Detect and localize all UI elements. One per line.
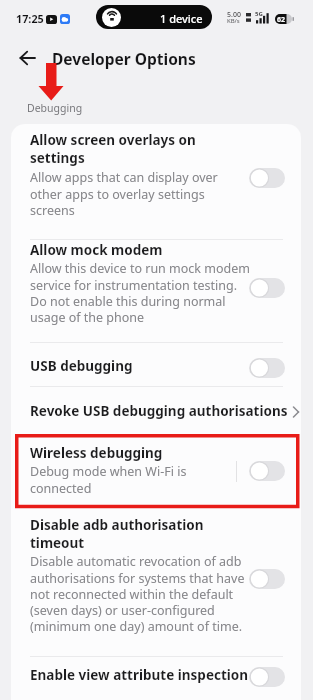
button[interactable]	[11, 239, 301, 342]
staticText: Developer Options	[52, 48, 196, 69]
staticText: Enable view attribute inspection	[30, 666, 249, 684]
button[interactable]	[96, 5, 212, 29]
staticText: 1 device	[160, 11, 203, 26]
staticText: KB/s	[227, 17, 240, 25]
button[interactable]	[249, 667, 285, 687]
button[interactable]	[249, 278, 285, 298]
staticText: Allow this device to run mock modem serv…	[30, 260, 250, 325]
button[interactable]	[11, 656, 301, 700]
staticText: 17:25	[16, 11, 44, 26]
button[interactable]	[249, 358, 285, 378]
button[interactable]	[11, 508, 301, 656]
staticText: 5.00	[227, 10, 241, 20]
staticText: Revoke USB debugging authorisations	[30, 402, 288, 420]
staticText: 5G	[255, 10, 263, 18]
staticText: Allow mock modem	[30, 241, 163, 259]
button[interactable]	[11, 434, 301, 508]
staticText: USB debugging	[30, 357, 133, 375]
button[interactable]	[11, 124, 301, 239]
button[interactable]	[249, 569, 285, 589]
staticText: 62	[277, 15, 286, 25]
staticText: Disable adb authorisation timeout	[30, 516, 204, 552]
staticText: Allow apps that can display over other a…	[30, 169, 218, 218]
button[interactable]	[11, 386, 301, 434]
staticText: Wireless debugging	[30, 444, 163, 462]
staticText: Debug mode when Wi-Fi is connected	[30, 463, 187, 496]
button[interactable]	[11, 342, 301, 386]
staticText: Debugging	[27, 101, 83, 115]
button[interactable]	[249, 168, 285, 188]
button[interactable]	[10, 40, 46, 76]
button[interactable]	[249, 461, 285, 481]
staticText: Disable automatic revocation of adb auth…	[30, 553, 245, 634]
staticText: Allow screen overlays on settings	[30, 131, 196, 167]
